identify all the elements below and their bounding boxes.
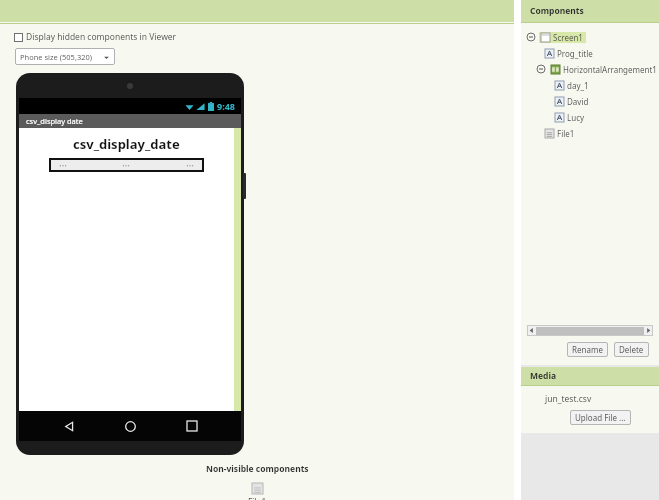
button[interactable]: Recents xyxy=(180,414,204,438)
staticText: Upload File ... xyxy=(575,412,626,423)
staticText: Prog_title xyxy=(557,48,593,59)
staticText: csv_display date xyxy=(26,116,83,126)
staticText: File1 xyxy=(248,496,267,500)
button[interactable]: Back xyxy=(57,414,81,438)
button[interactable]: Upload File ... xyxy=(570,410,631,425)
staticText: 9:48 xyxy=(217,100,235,112)
button[interactable]: Rename xyxy=(567,342,608,357)
button[interactable]: Home xyxy=(118,414,142,438)
button[interactable]: day_1 xyxy=(521,77,659,93)
button[interactable]: Display hidden components in Viewer xyxy=(14,31,177,43)
button[interactable] xyxy=(49,158,204,172)
staticText: David xyxy=(567,96,589,107)
button[interactable]: David xyxy=(521,93,659,109)
staticText: Delete xyxy=(619,344,644,355)
staticText: HorizontalArrangement1 xyxy=(563,64,657,75)
button[interactable]: HorizontalArrangement1 xyxy=(521,61,659,77)
staticText: Components xyxy=(530,5,584,17)
button[interactable]: Phone size (505,320) xyxy=(15,48,115,65)
staticText: Phone size (505,320) xyxy=(20,52,93,62)
staticText: Display hidden components in Viewer xyxy=(26,31,177,43)
staticText: Rename xyxy=(572,344,603,355)
staticText: day_1 xyxy=(567,80,589,91)
staticText: File1 xyxy=(557,128,575,139)
staticText: Screen1 xyxy=(553,32,583,43)
staticText: Non-visible components xyxy=(206,463,309,475)
button[interactable]: Lucy xyxy=(521,109,659,125)
button[interactable]: csv_display_date xyxy=(73,135,180,153)
staticText: Lucy xyxy=(567,112,585,123)
button[interactable]: Screen1 xyxy=(521,29,659,45)
staticText: jun_test.csv xyxy=(545,393,592,405)
button[interactable]: Prog_title xyxy=(521,45,659,61)
button[interactable]: File1 xyxy=(521,125,659,141)
staticText: csv_display_date xyxy=(73,135,180,153)
button[interactable]: Delete xyxy=(614,342,649,357)
staticText: Media xyxy=(530,370,557,382)
